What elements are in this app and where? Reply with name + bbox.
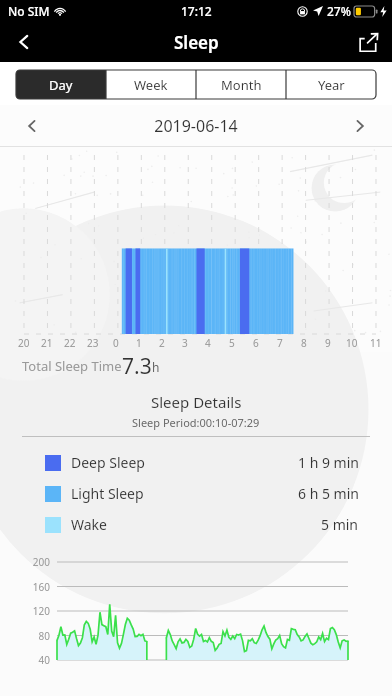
button[interactable]: Wake: [0, 509, 392, 540]
staticText: h: [152, 359, 160, 375]
staticText: Sleep: [174, 31, 219, 54]
staticText: 20: [18, 336, 30, 350]
staticText: 5 min: [321, 515, 359, 534]
staticText: 5: [229, 336, 235, 350]
staticText: Year: [318, 76, 345, 94]
staticText: 17:12: [181, 3, 212, 19]
staticText: Month: [221, 76, 262, 94]
staticText: 200: [18, 555, 50, 569]
button[interactable]: Next day: [328, 105, 392, 146]
staticText: 6: [253, 336, 259, 350]
button[interactable]: Month: [196, 70, 286, 99]
button[interactable]: Share: [344, 22, 392, 62]
staticText: 3: [182, 336, 188, 350]
staticText: 6 h 5 min: [298, 484, 359, 503]
staticText: Wake: [71, 515, 107, 534]
staticText: 23: [87, 336, 99, 350]
button[interactable]: Year: [286, 70, 376, 99]
button[interactable]: Previous day: [0, 105, 64, 146]
staticText: Total Sleep Time: [22, 357, 122, 375]
staticText: No SIM: [8, 3, 50, 19]
staticText: 2: [159, 336, 165, 350]
staticText: 11: [370, 336, 382, 350]
staticText: 7: [277, 336, 283, 350]
staticText: 120: [18, 604, 50, 618]
staticText: 80: [18, 629, 50, 643]
staticText: 22: [64, 336, 76, 350]
staticText: 4: [205, 336, 211, 350]
staticText: 40: [18, 653, 50, 667]
staticText: 1: [136, 336, 142, 350]
button[interactable]: Back: [0, 22, 48, 62]
staticText: 0: [113, 336, 119, 350]
staticText: 1 h 9 min: [298, 453, 359, 472]
staticText: 27%: [327, 3, 351, 19]
staticText: 2019-06-14: [64, 115, 328, 137]
staticText: 10: [346, 336, 358, 350]
staticText: Sleep Period:00:10-07:29: [132, 415, 260, 430]
staticText: 8: [301, 336, 307, 350]
staticText: 7.3: [122, 352, 152, 378]
staticText: Week: [134, 76, 168, 94]
staticText: Light Sleep: [71, 484, 144, 503]
staticText: 21: [41, 336, 53, 350]
staticText: Day: [49, 76, 73, 94]
staticText: 160: [18, 580, 50, 594]
staticText: Deep Sleep: [71, 453, 145, 472]
button[interactable]: Week: [106, 70, 196, 99]
button[interactable]: Day: [16, 70, 106, 99]
button[interactable]: Light Sleep: [0, 478, 392, 509]
button[interactable]: Deep Sleep: [0, 447, 392, 478]
staticText: 9: [325, 336, 331, 350]
staticText: Sleep Details: [151, 392, 242, 412]
